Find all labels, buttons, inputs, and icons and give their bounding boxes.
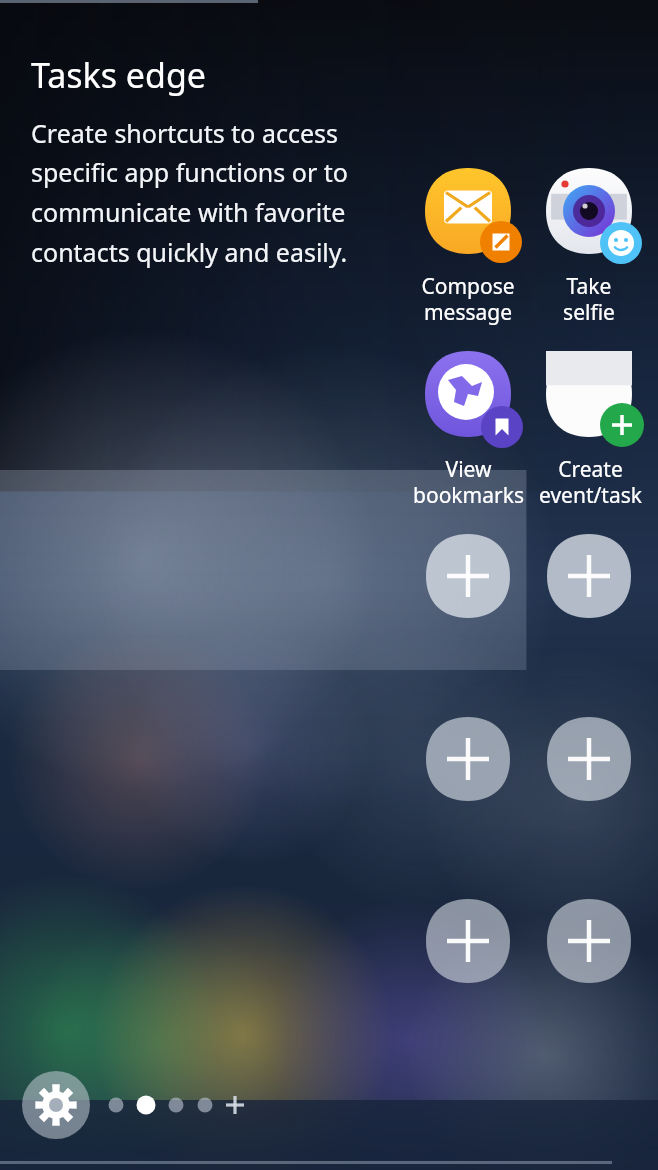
button[interactable]: View bookmarks <box>427 351 513 437</box>
staticText: Create event/task <box>539 455 642 510</box>
staticText: Compose message <box>421 272 515 327</box>
staticText: Take selfie <box>563 272 615 327</box>
button[interactable]: Add shortcut <box>548 534 632 618</box>
staticText: View bookmarks <box>413 455 524 510</box>
button[interactable]: Add shortcut <box>548 717 632 801</box>
staticText: Tasks edge <box>31 52 206 98</box>
button[interactable]: Add shortcut <box>427 717 511 801</box>
button[interactable]: Compose message <box>427 168 513 254</box>
button[interactable]: View bookmarks <box>408 455 528 510</box>
button[interactable]: Add panel <box>225 1095 247 1117</box>
button[interactable]: Add shortcut <box>427 899 511 983</box>
button[interactable]: Create event/task <box>529 455 651 510</box>
button[interactable]: Take selfie <box>548 168 634 254</box>
button[interactable]: Compose message <box>410 272 526 327</box>
button[interactable]: Settings <box>22 1071 90 1139</box>
staticText: Create shortcuts to access specific app … <box>31 116 381 270</box>
button[interactable]: Add shortcut <box>427 534 511 618</box>
button[interactable]: Take selfie <box>531 272 647 327</box>
button[interactable]: Add shortcut <box>548 899 632 983</box>
button[interactable]: Create event/task <box>548 351 634 437</box>
